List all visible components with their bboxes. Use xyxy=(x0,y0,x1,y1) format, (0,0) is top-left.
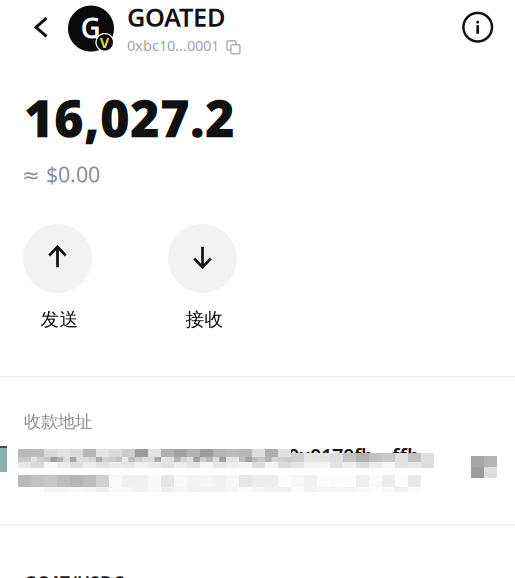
staticText: G xyxy=(80,9,100,46)
staticText: 接收 xyxy=(185,308,223,331)
staticText: GOATED xyxy=(127,0,226,34)
staticText: 16,027.2 xyxy=(24,84,235,151)
button[interactable]: G xyxy=(68,1,238,56)
staticText: 0xbc10...0001 xyxy=(127,36,219,55)
button[interactable]: 接收 xyxy=(168,224,237,331)
staticText: ≈ $0.00 xyxy=(22,160,100,188)
staticText: GOAT/USDC xyxy=(24,571,124,578)
button[interactable]: Back xyxy=(22,4,60,50)
button[interactable]: 发送 xyxy=(23,224,92,331)
staticText: 0x0170fb...ffb xyxy=(288,442,420,469)
staticText: 发送 xyxy=(40,308,78,331)
staticText: V xyxy=(100,33,110,52)
button[interactable]: Token info xyxy=(451,1,504,53)
staticText: 收款地址 xyxy=(24,411,92,432)
button[interactable]: 0x0170fb...ffb xyxy=(0,444,515,494)
